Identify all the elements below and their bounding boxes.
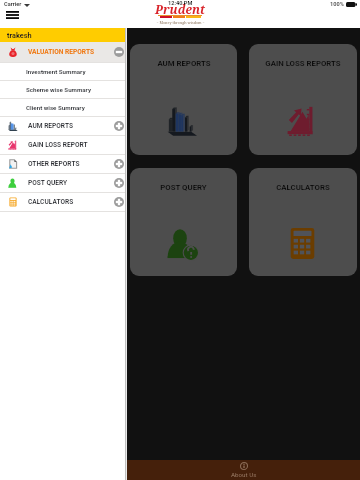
staticText: 12:40 PM xyxy=(168,0,193,7)
staticText: POST QUERY xyxy=(160,183,207,192)
staticText: Client wise Summary xyxy=(26,104,85,111)
staticText: Investment Summary xyxy=(26,68,86,75)
button[interactable]: Investment Summary xyxy=(0,63,125,80)
button[interactable]: Client wise Summary xyxy=(0,99,125,116)
staticText: Prudent xyxy=(155,1,206,17)
staticText: GAIN LOSS REPORT xyxy=(28,141,125,149)
staticText: OTHER REPORTS xyxy=(28,160,114,168)
button[interactable]: GAIN LOSS REPORTS xyxy=(249,44,357,155)
button[interactable]: About Us xyxy=(127,460,360,480)
staticText: CALCULATORS xyxy=(28,198,114,206)
button[interactable]: VALUATION REPORTS xyxy=(0,42,125,62)
button[interactable]: POST QUERY xyxy=(130,168,237,276)
staticText: POST QUERY xyxy=(28,179,114,187)
button[interactable]: CALCULATORS xyxy=(0,193,125,211)
staticText: Scheme wise Summary xyxy=(26,86,92,93)
button[interactable]: Scheme wise Summary xyxy=(0,81,125,98)
staticText: About Us xyxy=(231,471,257,478)
button[interactable]: OTHER REPORTS xyxy=(0,155,125,173)
button[interactable]: AUM REPORTS xyxy=(0,117,125,135)
button[interactable]: CALCULATORS xyxy=(249,168,357,276)
button[interactable]: AUM REPORTS xyxy=(130,44,237,155)
staticText: VALUATION REPORTS xyxy=(28,48,114,56)
button[interactable]: GAIN LOSS REPORT xyxy=(0,136,125,154)
button[interactable]: Open navigation menu xyxy=(2,7,23,22)
staticText: trakesh xyxy=(7,31,32,40)
staticText: ~ Money through wisdom ~ xyxy=(156,20,205,25)
staticText: CALCULATORS xyxy=(276,183,330,192)
staticText: Carrier xyxy=(4,1,22,8)
staticText: AUM REPORTS xyxy=(28,122,114,130)
staticText: GAIN LOSS REPORTS xyxy=(265,59,341,68)
staticText: AUM REPORTS xyxy=(157,59,211,68)
button[interactable]: POST QUERY xyxy=(0,174,125,192)
staticText: 100% xyxy=(330,1,344,8)
